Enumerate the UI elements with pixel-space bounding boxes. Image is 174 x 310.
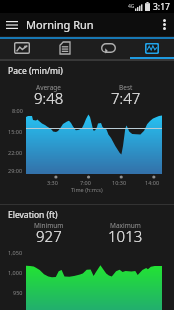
- staticText: 15:00: [8, 128, 23, 135]
- staticText: 9:48: [34, 88, 64, 108]
- staticText: 10:30: [112, 179, 127, 186]
- staticText: Pace (min/mi): [8, 65, 63, 77]
- button[interactable]: Map: [0, 39, 43, 59]
- staticText: 7:00: [80, 179, 91, 186]
- staticText: 7:47: [111, 88, 141, 108]
- staticText: Maximum: [110, 221, 141, 230]
- button[interactable]: Laps: [86, 39, 130, 59]
- staticText: Minimum: [34, 221, 64, 230]
- staticText: 22:00: [8, 149, 23, 156]
- staticText: 1,050: [8, 249, 23, 256]
- button[interactable]: Navigation menu: [0, 13, 24, 36]
- staticText: Morning Run: [26, 17, 94, 32]
- button[interactable]: More options: [154, 13, 174, 36]
- button[interactable]: Charts: [130, 39, 174, 59]
- staticText: 1013: [108, 226, 143, 246]
- staticText: 29:00: [8, 167, 23, 174]
- staticText: Elevation (ft): [8, 209, 58, 221]
- staticText: Average: [36, 83, 61, 92]
- staticText: 3:17: [153, 1, 170, 13]
- staticText: 3:30: [47, 179, 58, 186]
- button[interactable]: Details: [43, 39, 86, 59]
- staticText: 1,000: [8, 269, 23, 276]
- staticText: 8:00: [12, 107, 23, 114]
- staticText: 4G: [128, 3, 135, 10]
- staticText: 14:00: [145, 179, 160, 186]
- staticText: Time (h:m:s): [71, 186, 103, 193]
- staticText: Best: [119, 83, 133, 92]
- staticText: 927: [36, 226, 62, 246]
- staticText: 950: [13, 289, 23, 296]
